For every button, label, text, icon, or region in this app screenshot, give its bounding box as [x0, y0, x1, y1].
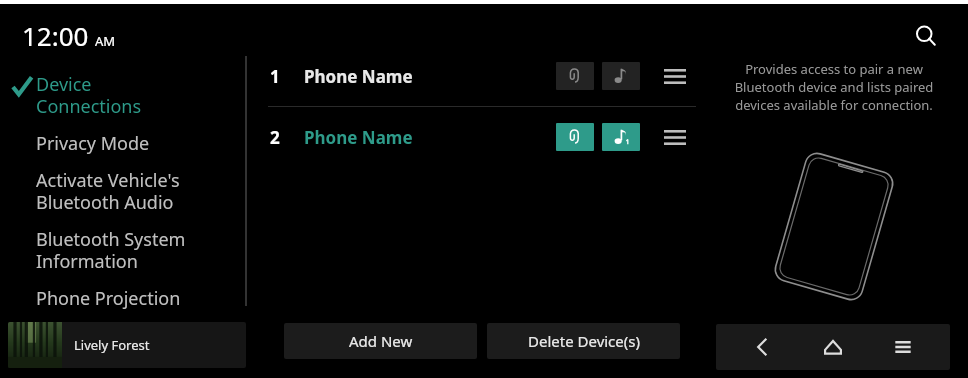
button[interactable]: Media audio — [602, 123, 640, 151]
button[interactable]: 1 — [250, 46, 700, 106]
staticText: 1 — [270, 65, 280, 88]
button[interactable]: Home — [810, 324, 856, 370]
staticText: Provides access to pair a new Bluetooth … — [714, 60, 954, 114]
staticText: 12:00 — [22, 18, 89, 53]
staticText: Phone Projection — [36, 286, 181, 311]
staticText: Activate Vehicle's Bluetooth Audio — [36, 168, 180, 215]
button[interactable]: Media audio — [602, 62, 640, 90]
staticText: Add New — [349, 331, 413, 351]
staticText: Delete Device(s) — [528, 331, 640, 351]
button[interactable]: Activate Vehicle's Bluetooth Audio — [0, 162, 250, 221]
button[interactable]: Phone Projection — [0, 280, 250, 317]
button[interactable]: Bluetooth System Information — [0, 221, 250, 280]
button[interactable]: Lively Forest — [8, 322, 246, 368]
button[interactable]: Search — [908, 18, 944, 54]
button[interactable]: Phone audio — [556, 123, 594, 151]
button[interactable]: Privacy Mode — [0, 125, 250, 162]
button[interactable]: Reorder device — [658, 59, 692, 93]
staticText: Privacy Mode — [36, 131, 150, 156]
button[interactable]: Reorder device — [658, 120, 692, 154]
staticText: Phone Name — [304, 65, 413, 88]
button[interactable]: Phone audio — [556, 62, 594, 90]
button[interactable]: 2 — [250, 107, 700, 167]
button[interactable]: Menu — [880, 324, 926, 370]
staticText: 2 — [270, 126, 280, 149]
button[interactable]: Delete Device(s) — [487, 323, 680, 359]
staticText: AM — [95, 32, 116, 50]
staticText: Phone Name — [304, 126, 413, 149]
button[interactable]: Add New — [284, 323, 477, 359]
staticText: Lively Forest — [74, 336, 150, 354]
staticText: Device Connections — [36, 72, 142, 119]
button[interactable]: Back — [740, 324, 786, 370]
button[interactable]: Device Connections — [0, 66, 250, 125]
staticText: Bluetooth System Information — [36, 227, 186, 274]
